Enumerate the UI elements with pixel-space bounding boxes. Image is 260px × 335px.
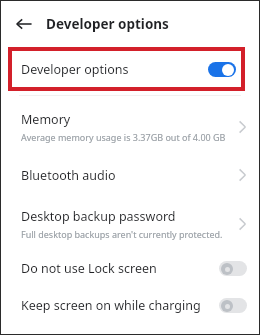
staticText: Desktop backup password [21,208,176,225]
button[interactable]: Bluetooth audio details [238,168,247,182]
button[interactable]: Desktop backup password [1,203,259,245]
staticText: Developer options [46,15,169,33]
staticText: Developer options [21,61,208,78]
staticText: Do not use Lock screen [21,260,157,277]
button[interactable]: Do not use Lock screen [1,252,259,285]
button[interactable]: Do not use Lock screen toggle, off [219,261,247,276]
button[interactable]: Memory details [238,120,247,134]
staticText: Bluetooth audio [21,167,116,184]
button[interactable]: Keep screen on while charging [1,289,259,322]
staticText: Full desktop backups aren't currently pr… [21,228,223,240]
button[interactable]: Bluetooth audio [1,159,259,191]
staticText: Keep screen on while charging [21,297,201,314]
button[interactable]: Developer options [13,47,240,91]
button[interactable]: Desktop backup password details [238,217,247,231]
staticText: Average memory usage is 3.37GB out of 4.… [21,131,226,143]
staticText: Memory [21,111,71,128]
button[interactable]: Developer options toggle, on [208,62,236,77]
button[interactable]: Back [14,14,34,34]
button[interactable]: Memory [1,105,259,149]
button[interactable]: Keep screen on while charging toggle, of… [219,298,247,313]
